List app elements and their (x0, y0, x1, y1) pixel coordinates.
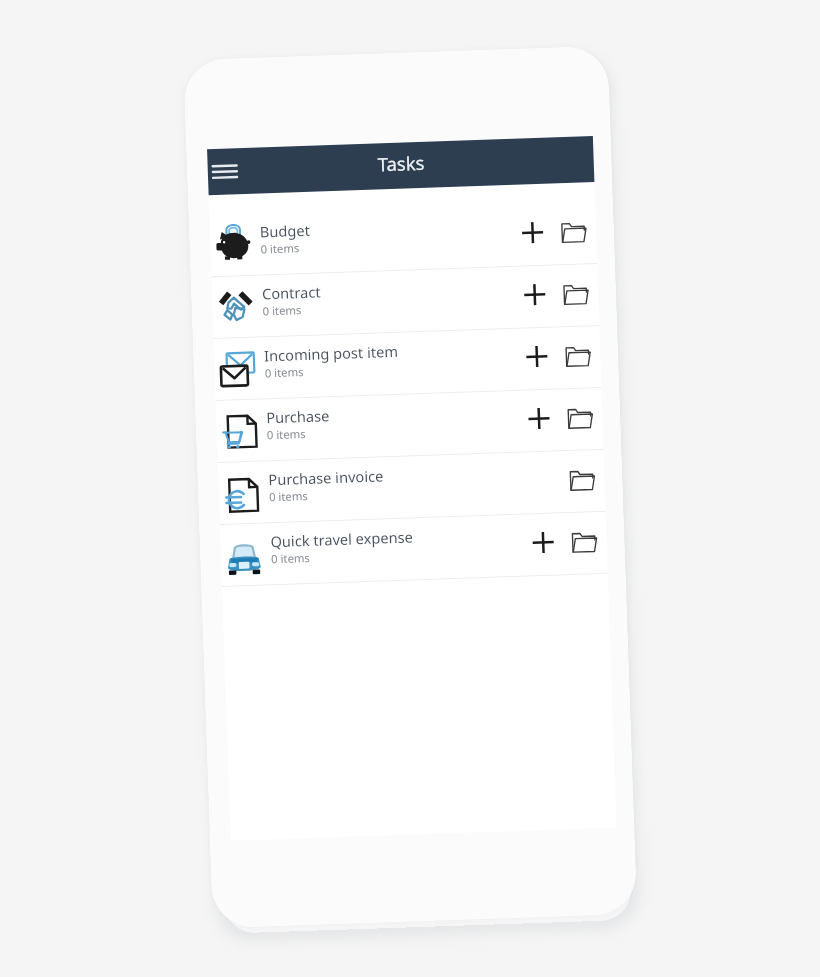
button[interactable]: Open folder (558, 276, 594, 312)
staticText: Contract (262, 281, 321, 303)
button[interactable]: Open folder (560, 338, 596, 374)
button[interactable]: Open folder (562, 400, 598, 436)
staticText: 0 items (267, 426, 306, 442)
button[interactable]: Add (519, 338, 555, 375)
staticText: 0 items (262, 302, 302, 318)
button[interactable]: Menu (204, 151, 245, 192)
button[interactable]: Purchase invoice (218, 450, 606, 525)
staticText: Budget (260, 220, 310, 241)
button[interactable]: Add (514, 215, 551, 251)
staticText: 0 items (271, 550, 310, 566)
button[interactable]: Contract (211, 264, 599, 339)
button[interactable]: Add (521, 400, 557, 437)
staticText: Incoming post item (264, 341, 398, 365)
button[interactable]: Add (525, 524, 561, 561)
button[interactable]: Open folder (566, 524, 602, 560)
staticText: Purchase (266, 405, 330, 427)
staticText: Tasks (377, 150, 425, 176)
staticText: 0 items (264, 364, 304, 380)
staticText: 0 items (269, 488, 308, 504)
button[interactable]: Purchase (216, 388, 604, 463)
button[interactable]: Add (517, 276, 553, 313)
button[interactable]: Open folder (555, 214, 592, 250)
staticText: 0 items (260, 240, 300, 256)
staticText: Purchase invoice (268, 465, 384, 489)
button[interactable]: Incoming post item (214, 326, 601, 401)
staticText: Quick travel expense (270, 526, 414, 551)
button[interactable]: Open folder (564, 462, 600, 498)
button[interactable]: Quick travel expense (220, 512, 608, 587)
button[interactable]: Budget (209, 202, 597, 277)
